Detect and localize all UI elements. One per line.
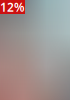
staticText: 12% bbox=[0, 0, 25, 15]
button[interactable]: 12% bbox=[0, 0, 25, 14]
